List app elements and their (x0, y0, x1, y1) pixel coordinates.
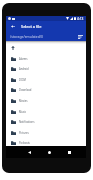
staticText: DCIM (19, 78, 26, 82)
button[interactable]: Android (6, 63, 86, 74)
staticText: Android (19, 67, 29, 71)
staticText: Music (19, 110, 27, 114)
button[interactable]: DCIM (6, 74, 86, 85)
button[interactable]: Alarms (6, 53, 86, 64)
button[interactable]: Movies (6, 95, 86, 106)
staticText: Notifications (19, 120, 35, 124)
staticText: 4:13 (77, 17, 84, 21)
button[interactable]: Navigate up (6, 21, 17, 32)
button[interactable]: Recent apps (61, 146, 77, 158)
staticText: Podcasts (19, 141, 30, 145)
button[interactable]: Home (41, 146, 57, 158)
button[interactable]: Parent directory (6, 42, 86, 53)
button[interactable]: Download (6, 84, 86, 95)
staticText: Alarms (19, 57, 28, 61)
staticText: /storage/emulated/0 (10, 34, 76, 39)
button[interactable]: Music (6, 106, 86, 117)
staticText: Pictures (19, 131, 29, 135)
staticText: Movies (19, 99, 28, 103)
button[interactable]: Podcasts (6, 137, 86, 148)
button[interactable]: Back (21, 146, 37, 158)
button[interactable]: Sort (76, 32, 85, 41)
button[interactable]: Pictures (6, 127, 86, 138)
staticText: Download (19, 88, 32, 92)
button[interactable]: Notifications (6, 116, 86, 127)
staticText: Select a file (21, 24, 42, 29)
